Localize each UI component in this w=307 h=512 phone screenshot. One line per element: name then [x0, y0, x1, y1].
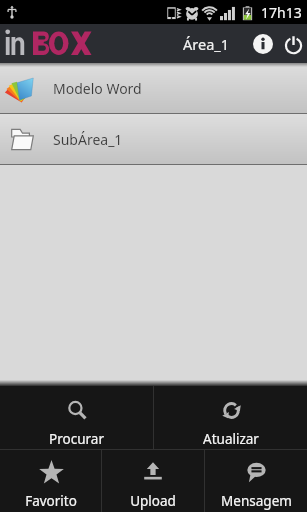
staticText: Procurar: [49, 430, 104, 448]
button[interactable]: SubÁrea_1: [0, 114, 307, 164]
button[interactable]: Favorito: [0, 450, 101, 512]
button[interactable]: Power off: [281, 32, 305, 56]
button[interactable]: Information: [251, 32, 275, 56]
button[interactable]: Modelo Word: [0, 63, 307, 113]
staticText: 17h13: [261, 3, 302, 22]
staticText: Atualizar: [203, 430, 259, 448]
button[interactable]: Atualizar: [154, 386, 307, 449]
staticText: Área_1: [183, 34, 230, 54]
button[interactable]: Upload: [102, 450, 204, 512]
staticText: Mensagem: [221, 492, 292, 510]
button[interactable]: Procurar: [0, 386, 153, 449]
staticText: Modelo Word: [53, 79, 142, 98]
staticText: SubÁrea_1: [53, 130, 123, 149]
staticText: Upload: [130, 492, 176, 510]
staticText: Favorito: [25, 492, 77, 510]
button[interactable]: Mensagem: [205, 450, 307, 512]
